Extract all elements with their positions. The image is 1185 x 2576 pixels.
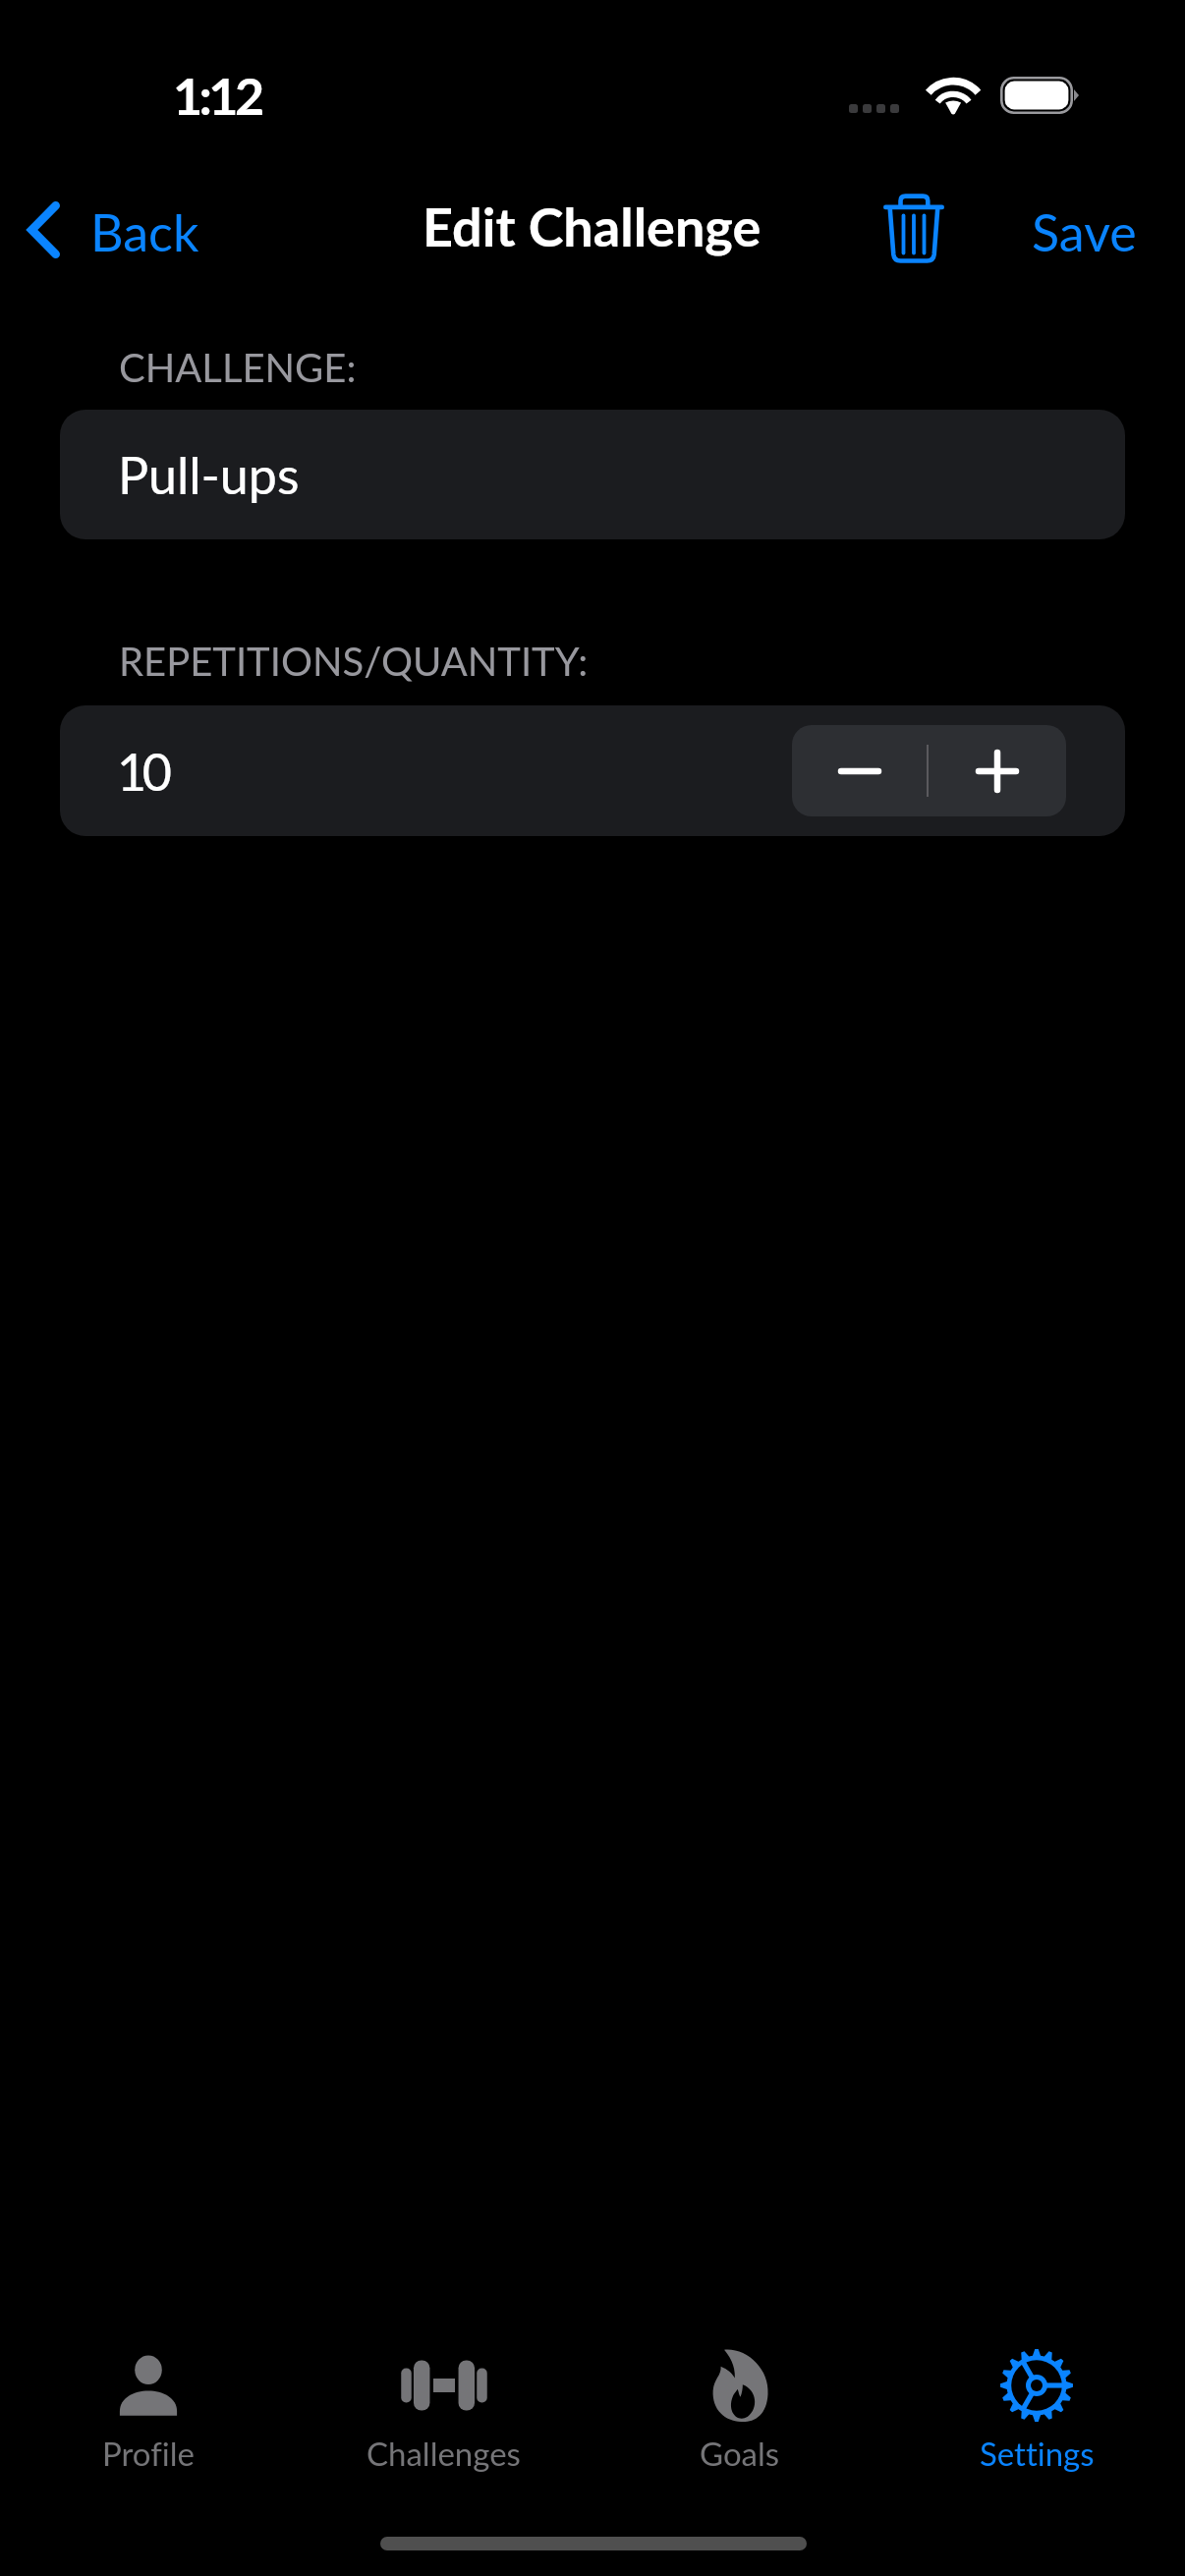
staticText: Edit Challenge	[423, 195, 762, 258]
staticText: Profile	[102, 2434, 195, 2473]
button[interactable]: Back	[10, 183, 217, 281]
button[interactable]: Decrease	[792, 725, 927, 816]
staticText: CHALLENGE:	[119, 344, 357, 391]
button[interactable]: Challenges	[296, 2338, 592, 2495]
staticText: 10	[117, 741, 168, 802]
staticText: Goals	[700, 2434, 780, 2473]
staticText: Settings	[980, 2434, 1095, 2473]
button[interactable]: Settings	[888, 2338, 1185, 2495]
staticText: Challenges	[367, 2434, 521, 2473]
staticText: Back	[90, 201, 199, 262]
staticText: REPETITIONS/QUANTITY:	[119, 638, 589, 685]
staticText: 1:12	[173, 65, 261, 126]
staticText: Save	[1032, 201, 1137, 262]
button[interactable]: Increase	[929, 725, 1066, 816]
button[interactable]: Goals	[592, 2338, 888, 2495]
staticText: Pull-ups	[118, 444, 300, 505]
button[interactable]: Pull-ups	[60, 410, 1125, 539]
button[interactable]: Profile	[0, 2338, 296, 2495]
button[interactable]: Save	[1004, 183, 1164, 281]
button[interactable]: Delete	[864, 179, 963, 281]
